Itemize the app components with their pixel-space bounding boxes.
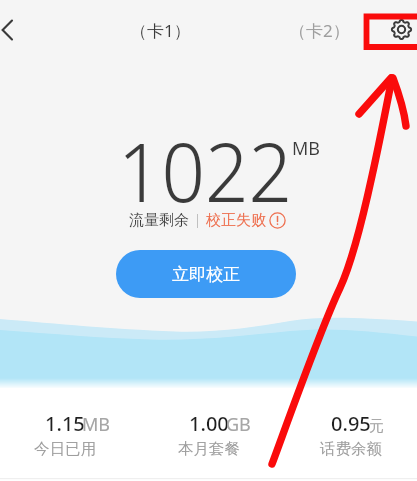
- button[interactable]: （卡1）: [130, 19, 191, 42]
- staticText: 0.95: [331, 410, 371, 437]
- button[interactable]: 0.95: [291, 405, 411, 463]
- button[interactable]: Settings: [380, 9, 417, 51]
- button[interactable]: Back: [0, 0, 44, 44]
- staticText: MB: [82, 412, 111, 437]
- staticText: 流量剩余: [129, 211, 189, 230]
- staticText: 本月套餐: [178, 439, 240, 459]
- staticText: 今日已用: [34, 439, 96, 459]
- staticText: （卡1）: [130, 19, 191, 42]
- staticText: 1022: [118, 115, 292, 225]
- staticText: （卡2）: [289, 19, 350, 42]
- staticText: 元: [369, 417, 384, 436]
- staticText: 1.15: [45, 410, 85, 437]
- button[interactable]: 校正失败: [206, 211, 286, 230]
- button[interactable]: （卡2）: [289, 19, 350, 42]
- button[interactable]: 立即校正: [116, 250, 296, 298]
- staticText: 立即校正: [172, 264, 240, 285]
- staticText: 1.00: [189, 410, 229, 437]
- staticText: GB: [226, 412, 251, 437]
- staticText: 话费余额: [320, 439, 382, 459]
- staticText: MB: [292, 136, 321, 161]
- staticText: 校正失败: [206, 211, 266, 230]
- button[interactable]: 1.15: [5, 405, 125, 463]
- button[interactable]: 1.00: [149, 405, 269, 463]
